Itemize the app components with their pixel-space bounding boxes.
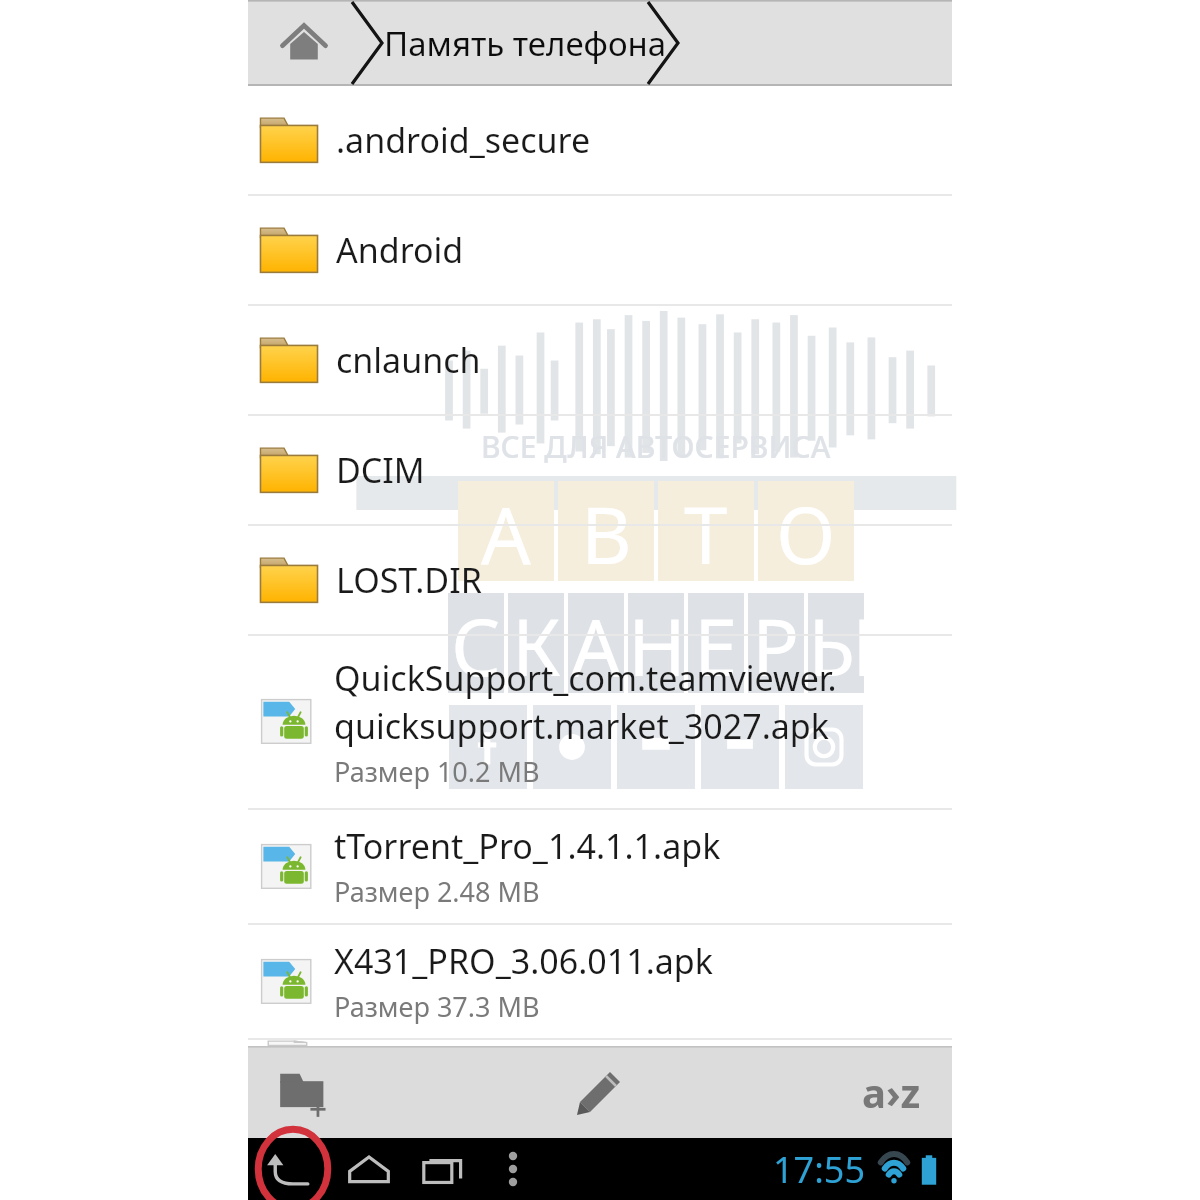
staticText: Н [628, 593, 684, 693]
staticText: Память телефона [384, 21, 667, 66]
button[interactable]: Back [256, 1138, 330, 1200]
button[interactable]: Home [334, 1138, 404, 1200]
staticText: QuickSupport_com.teamviewer. [334, 655, 837, 701]
staticText: Размер 10.2 MB [334, 753, 540, 790]
staticText: А [571, 593, 621, 693]
staticText: Размер 37.3 MB [334, 988, 540, 1025]
button[interactable]: sl.dat [248, 1040, 952, 1046]
staticText: LOST.DIR [336, 557, 482, 603]
button[interactable]: cnlaunch [248, 306, 952, 414]
staticText: Размер 2.48 MB [334, 873, 540, 910]
staticText: X431_PRO_3.06.011.apk [334, 938, 713, 984]
staticText: cnlaunch [336, 337, 481, 383]
staticText: Android [336, 227, 464, 273]
staticText: О [776, 481, 836, 581]
staticText: quicksupport.market_3027.apk [334, 703, 829, 749]
button[interactable]: Android [248, 196, 952, 304]
button[interactable]: New folder [266, 1053, 344, 1131]
staticText: 17:55 [773, 1145, 866, 1194]
button[interactable]: tTorrent_Pro_1.4.1.1.apk [248, 810, 952, 923]
button[interactable]: Recent apps [408, 1138, 478, 1200]
staticText: Е [694, 593, 738, 693]
staticText: ВСЕ ДЛЯ АВТОСЕРВИСА [481, 426, 831, 467]
button[interactable]: LOST.DIR [248, 526, 952, 634]
staticText: В [581, 481, 632, 581]
staticText: a›z [862, 1065, 921, 1119]
button[interactable]: DCIM [248, 416, 952, 524]
button[interactable]: More options [484, 1138, 542, 1200]
staticText: Т [684, 481, 728, 581]
staticText: tTorrent_Pro_1.4.1.1.apk [334, 823, 721, 869]
staticText: К [512, 593, 561, 693]
button[interactable]: X431_PRO_3.06.011.apk [248, 925, 952, 1038]
button[interactable]: Edit [561, 1053, 639, 1131]
staticText: .android_secure [336, 117, 591, 163]
staticText: Р [752, 593, 800, 693]
button[interactable]: Home [270, 9, 338, 77]
button[interactable]: .android_secure [248, 86, 952, 194]
staticText: С [451, 593, 501, 693]
button[interactable]: Sort [848, 1049, 934, 1135]
staticText: А [481, 481, 531, 581]
staticText: DCIM [336, 447, 425, 493]
staticText: Ы [808, 593, 864, 693]
button[interactable]: QuickSupport_com.teamviewer. [248, 636, 952, 808]
